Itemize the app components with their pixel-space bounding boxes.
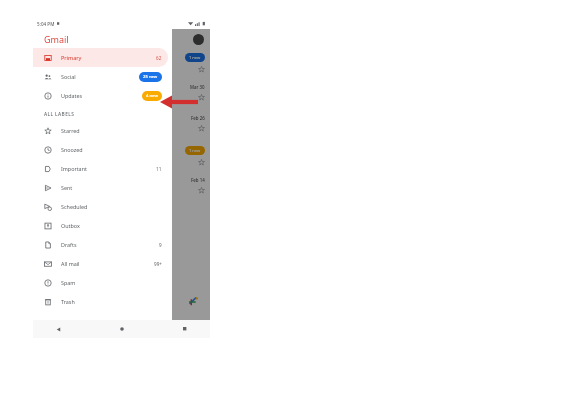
staticText: Feb 14 (191, 177, 205, 183)
button[interactable]: Spam (33, 273, 168, 292)
staticText: 99+ (154, 261, 162, 267)
staticText: Gmail (44, 33, 69, 45)
button[interactable]: All mail (33, 254, 168, 273)
staticText: 1 new (189, 148, 201, 153)
staticText: 5:04 PM (37, 21, 55, 27)
button[interactable]: Sent (33, 178, 168, 197)
staticText: ALL LABELS (44, 111, 75, 118)
staticText: Sent (61, 184, 73, 191)
button[interactable]: Recents (178, 322, 192, 336)
button[interactable]: Home (115, 322, 129, 336)
staticText: Important (61, 165, 87, 172)
staticText: All mail (61, 260, 80, 267)
button[interactable]: Social (33, 67, 168, 86)
staticText: Mar 30 (190, 84, 205, 90)
staticText: Spam (61, 279, 76, 286)
staticText: Scheduled (61, 203, 88, 210)
staticText: Primary (61, 54, 82, 61)
staticText: Drafts (61, 241, 77, 248)
staticText: 62 (156, 55, 162, 61)
button[interactable]: Primary (33, 48, 168, 67)
button[interactable]: Trash (33, 292, 168, 311)
staticText: 1 new (189, 55, 201, 60)
button[interactable]: Snoozed (33, 140, 168, 159)
staticText: 9 (159, 242, 162, 248)
button[interactable]: Compose (183, 291, 203, 311)
staticText: Outbox (61, 222, 80, 229)
button[interactable]: Scheduled (33, 197, 168, 216)
button[interactable]: Back (51, 322, 65, 336)
staticText: Trash (61, 298, 75, 305)
staticText: 11 (156, 166, 162, 172)
staticText: Feb 26 (191, 115, 205, 121)
button[interactable]: Important (33, 159, 168, 178)
button[interactable]: Updates (33, 86, 168, 105)
button[interactable]: Drafts (33, 235, 168, 254)
staticText: 25 new (143, 74, 158, 80)
staticText: Updates (61, 92, 83, 99)
staticText: Social (61, 73, 76, 80)
button[interactable]: Outbox (33, 216, 168, 235)
staticText: 4 new (146, 93, 158, 99)
staticText: Starred (61, 127, 80, 134)
staticText: Snoozed (61, 146, 83, 153)
button[interactable]: Starred (33, 121, 168, 140)
